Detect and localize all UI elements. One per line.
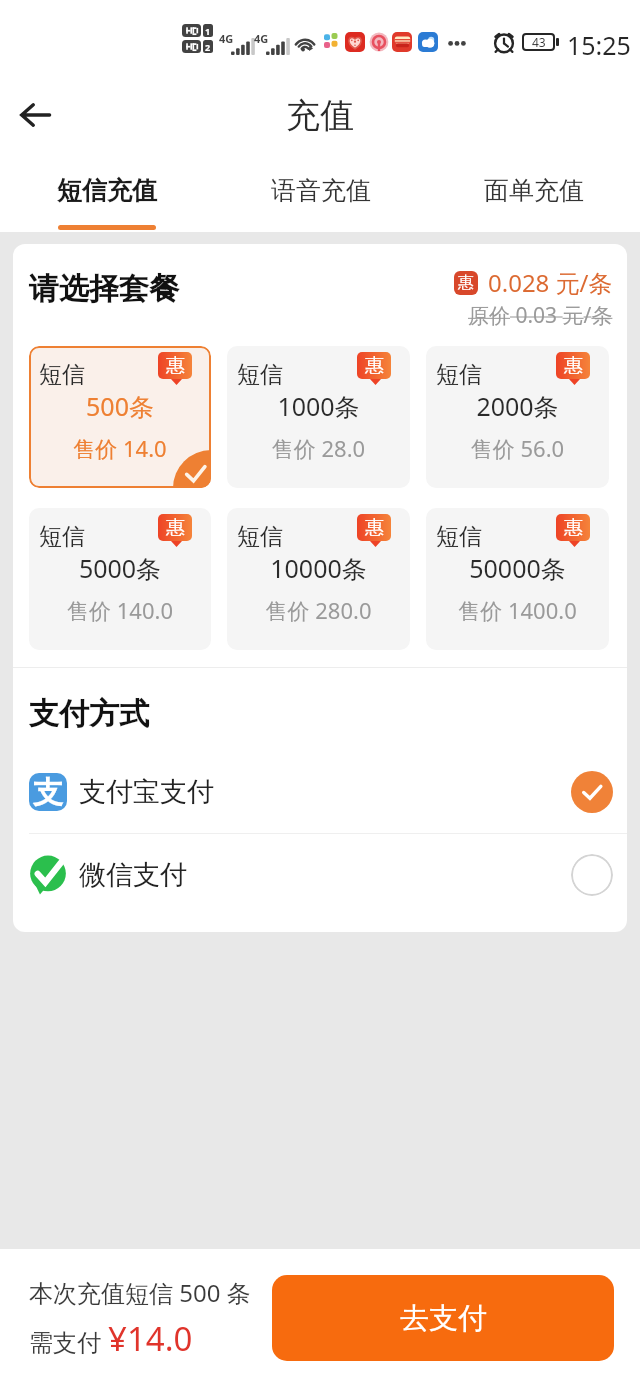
staticText: 惠 [166, 354, 185, 378]
staticText: 43 [532, 34, 546, 50]
staticText: 2000条 [426, 389, 609, 423]
staticText: 充值 [286, 94, 354, 137]
staticText: 需支付 [29, 1325, 108, 1358]
button[interactable]: 短信 [227, 346, 410, 488]
staticText: 售价 56.0 [426, 433, 609, 463]
staticText: ¥14.0 [108, 1316, 193, 1361]
button[interactable]: 面单充值 [427, 160, 640, 232]
staticText: 短信 [436, 522, 482, 551]
staticText: 惠 [458, 273, 474, 293]
button[interactable]: 短信 [426, 346, 609, 488]
staticText: 惠 [564, 354, 583, 378]
button[interactable]: 短信 [426, 508, 609, 650]
staticText: 去支付 [400, 1300, 487, 1337]
button[interactable]: 去支付 [272, 1275, 614, 1361]
staticText: 售价 28.0 [227, 433, 410, 463]
staticText: 原价 0.03 元/条 [468, 301, 613, 330]
staticText: 本次充值短信 500 条 [29, 1276, 251, 1309]
staticText: 惠 [365, 354, 384, 378]
staticText: 惠 [166, 516, 185, 540]
staticText: 微信支付 [79, 858, 187, 892]
staticText: 语音充值 [271, 175, 371, 206]
staticText: 0.028 元/条 [488, 266, 613, 299]
button[interactable]: 支 [13, 751, 627, 833]
button[interactable]: 短信 [29, 346, 211, 488]
staticText: 售价 280.0 [227, 595, 410, 625]
button[interactable]: 短信 [227, 508, 410, 650]
staticText: 惠 [564, 516, 583, 540]
staticText: 500条 [29, 389, 211, 423]
staticText: 面单充值 [484, 175, 584, 206]
staticText: 短信 [39, 522, 85, 551]
button[interactable]: 短信 [29, 508, 211, 650]
staticText: 4G [254, 31, 269, 46]
staticText: 短信 [436, 360, 482, 389]
staticText: 支 [33, 774, 63, 811]
staticText: 请选择套餐 [29, 270, 179, 308]
button[interactable]: Back [10, 89, 62, 141]
staticText: 5000条 [29, 551, 211, 585]
staticText: 15:25 [567, 28, 631, 62]
staticText: 1 [205, 25, 211, 37]
staticText: 10000条 [227, 551, 410, 585]
staticText: 4G [219, 31, 234, 46]
staticText: 1000条 [227, 389, 410, 423]
staticText: 短信 [237, 522, 283, 551]
staticText: 售价 1400.0 [426, 595, 609, 625]
staticText: 短信 [39, 360, 85, 389]
staticText: 支付方式 [29, 695, 149, 733]
button[interactable]: 微信支付 [13, 834, 627, 916]
staticText: 短信 [237, 360, 283, 389]
staticText: 50000条 [426, 551, 609, 585]
staticText: 惠 [365, 516, 384, 540]
staticText: 售价 140.0 [29, 595, 211, 625]
staticText: 售价 14.0 [29, 433, 211, 463]
staticText: 支付宝支付 [79, 775, 214, 809]
staticText: 2 [205, 41, 211, 53]
button[interactable]: 短信充值 [0, 160, 214, 232]
button[interactable]: 语音充值 [214, 160, 427, 232]
staticText: 短信充值 [57, 175, 157, 206]
